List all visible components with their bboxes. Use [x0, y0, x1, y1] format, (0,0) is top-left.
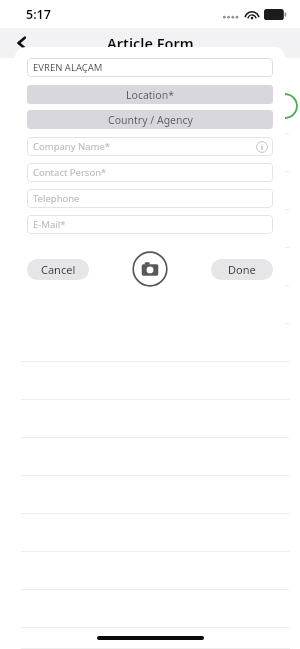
button[interactable]: Location*: [27, 85, 273, 104]
button[interactable]: E-Mail*: [27, 215, 273, 234]
button[interactable]: Contact Person*: [27, 163, 273, 182]
button[interactable]: Take photo: [132, 251, 168, 287]
button[interactable]: Back: [6, 28, 38, 58]
button[interactable]: Country / Agency: [27, 110, 273, 129]
staticText: Done: [228, 262, 256, 277]
staticText: EVREN ALAÇAM: [33, 61, 103, 74]
staticText: 5:17: [26, 6, 51, 23]
staticText: E-Mail*: [33, 218, 66, 231]
button[interactable]: Company Name*: [27, 137, 273, 156]
button[interactable]: EVREN ALAÇAM: [27, 58, 273, 77]
staticText: Contact Person*: [33, 166, 107, 179]
button[interactable]: Telephone: [27, 189, 273, 208]
button[interactable]: Done: [211, 259, 273, 280]
staticText: Article Form: [107, 33, 194, 53]
staticText: Company Name*: [33, 140, 111, 153]
staticText: Telephone: [33, 192, 80, 205]
staticText: Cancel: [41, 262, 76, 277]
staticText: Location*: [126, 88, 174, 102]
staticText: Country / Agency: [108, 113, 193, 127]
button[interactable]: Cancel: [27, 259, 89, 280]
